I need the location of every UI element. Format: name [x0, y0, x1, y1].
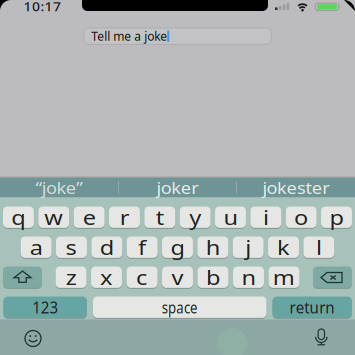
button[interactable]: m — [269, 266, 299, 288]
staticText: return — [286, 296, 338, 319]
staticText: j — [246, 234, 251, 260]
staticText: f — [139, 234, 146, 260]
staticText: r — [120, 204, 128, 230]
button[interactable]: x — [91, 266, 122, 288]
staticText: 123 — [30, 296, 60, 319]
button[interactable]: p — [321, 206, 352, 228]
staticText: g — [171, 234, 183, 260]
button[interactable]: Tell me a joke — [84, 28, 271, 44]
button[interactable]: u — [215, 206, 246, 228]
button[interactable]: k — [268, 236, 299, 258]
button[interactable]: n — [233, 266, 264, 288]
staticText: b — [207, 264, 219, 290]
staticText: y — [190, 204, 200, 230]
button[interactable]: q — [3, 206, 34, 228]
button[interactable]: w — [38, 206, 69, 228]
staticText: o — [295, 204, 307, 230]
staticText: u — [224, 204, 236, 230]
button[interactable]: o — [286, 206, 317, 228]
staticText: t — [156, 204, 163, 230]
button[interactable]: Emoji — [24, 329, 42, 347]
staticText: space — [156, 296, 203, 319]
staticText: e — [84, 204, 95, 230]
button[interactable]: t — [144, 206, 175, 228]
button[interactable]: Dictation — [312, 328, 330, 346]
staticText: c — [137, 264, 147, 290]
staticText: z — [66, 264, 75, 290]
button[interactable]: return — [272, 296, 352, 318]
button[interactable]: Delete — [313, 266, 352, 288]
button[interactable]: Shift — [3, 266, 42, 288]
button[interactable]: j — [233, 236, 264, 258]
staticText: a — [31, 234, 42, 260]
button[interactable]: space — [93, 296, 266, 318]
staticText: q — [12, 204, 24, 230]
button[interactable]: joker — [119, 177, 236, 197]
button[interactable]: f — [127, 236, 158, 258]
button[interactable]: “joke” — [0, 177, 117, 197]
staticText: d — [101, 234, 113, 260]
staticText: 10:17 — [24, 0, 60, 15]
staticText: Tell me a joke — [91, 28, 167, 44]
staticText: n — [242, 264, 254, 290]
staticText: l — [316, 234, 321, 260]
button[interactable]: l — [303, 236, 334, 258]
staticText: x — [101, 264, 112, 290]
button[interactable]: 123 — [3, 296, 87, 318]
button[interactable]: b — [198, 266, 228, 288]
button[interactable]: jokester — [237, 177, 354, 197]
button[interactable]: g — [162, 236, 193, 258]
staticText: “joke” — [36, 176, 81, 199]
staticText: i — [263, 204, 268, 230]
staticText: s — [66, 234, 76, 260]
button[interactable]: a — [21, 236, 52, 258]
staticText: m — [274, 264, 293, 290]
button[interactable]: z — [55, 266, 86, 288]
staticText: h — [207, 234, 219, 260]
button[interactable]: i — [250, 206, 281, 228]
staticText: jokester — [264, 176, 328, 199]
button[interactable]: s — [56, 236, 87, 258]
button[interactable]: r — [109, 206, 140, 228]
button[interactable]: e — [74, 206, 105, 228]
staticText: v — [172, 264, 182, 290]
staticText: w — [46, 204, 62, 230]
button[interactable]: v — [162, 266, 193, 288]
staticText: joker — [157, 176, 197, 199]
button[interactable]: d — [91, 236, 122, 258]
button[interactable]: c — [126, 266, 157, 288]
button[interactable]: h — [197, 236, 228, 258]
staticText: p — [330, 204, 342, 230]
staticText: k — [278, 234, 289, 260]
button[interactable]: y — [180, 206, 211, 228]
